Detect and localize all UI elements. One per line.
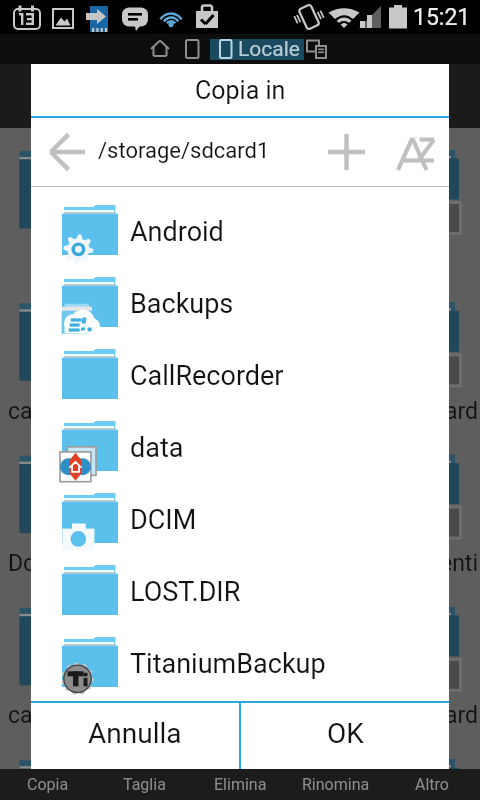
button[interactable]: Taglia (96, 769, 192, 800)
staticText: documenti (369, 550, 478, 577)
staticText: CallRecorder (130, 360, 284, 392)
staticText: 15:21 (413, 4, 471, 31)
button[interactable]: Elimina (192, 769, 288, 800)
staticText: Backups (130, 288, 234, 320)
staticText: /storage/sdcard1 (98, 138, 270, 164)
button[interactable]: Altro (384, 769, 480, 800)
staticText: Altro (415, 775, 449, 794)
staticText: sdcard (408, 702, 478, 729)
button[interactable] (210, 39, 304, 60)
staticText: Rinomina (302, 775, 370, 794)
staticText: LOST.DIR (130, 576, 241, 608)
staticText: TitaniumBackup (130, 648, 326, 680)
staticText: cartella (8, 398, 85, 425)
button[interactable]: CallRecorder (31, 331, 449, 403)
button[interactable]: Backups (31, 259, 449, 331)
staticText: Download (8, 550, 111, 577)
button[interactable]: Device storage (180, 34, 206, 64)
button[interactable]: Network (304, 34, 332, 64)
staticText: Locale (238, 37, 300, 62)
staticText: DCIM (130, 504, 197, 536)
staticText: Elimina (214, 775, 267, 794)
button[interactable]: OK (241, 703, 449, 769)
staticText: Copia (27, 775, 69, 794)
button[interactable]: Annulla (31, 703, 239, 769)
staticText: cartella (8, 702, 85, 729)
staticText: sdcard (408, 398, 478, 425)
button[interactable]: DCIM (31, 475, 449, 547)
staticText: Android (130, 216, 224, 248)
staticText: data (130, 432, 184, 464)
button[interactable]: Home (146, 34, 174, 64)
button[interactable]: Android (31, 187, 449, 259)
button[interactable]: TitaniumBackup (31, 619, 449, 691)
button[interactable]: Back (38, 119, 96, 185)
button[interactable]: Rinomina (288, 769, 384, 800)
staticText: OK (327, 717, 364, 750)
button[interactable]: Copia (0, 769, 96, 800)
staticText: Copia in (195, 76, 286, 105)
button[interactable]: LOST.DIR (31, 547, 449, 619)
staticText: Taglia (123, 775, 166, 794)
button[interactable]: data (31, 403, 449, 475)
button[interactable]: New folder (319, 119, 373, 185)
button[interactable]: Sort (388, 121, 444, 187)
staticText: Annulla (88, 717, 182, 750)
